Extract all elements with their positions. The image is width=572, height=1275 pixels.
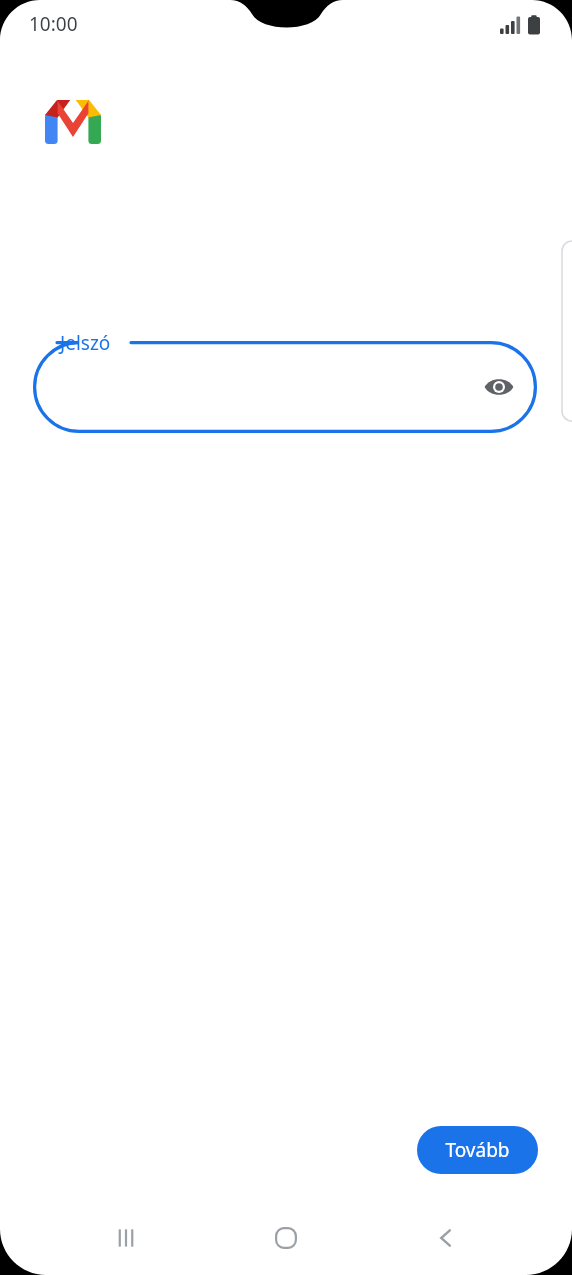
- button[interactable]: Tovább: [417, 1126, 538, 1174]
- staticText: 10:00: [29, 11, 78, 37]
- staticText: Tovább: [445, 1137, 510, 1163]
- staticText: Jelszó: [60, 330, 111, 356]
- button[interactable]: Back: [416, 1214, 476, 1262]
- button[interactable]: Recent apps: [96, 1214, 156, 1262]
- other: Signal and battery status: [500, 14, 550, 40]
- button[interactable]: Jelszó megjelenítése: [475, 363, 523, 411]
- button[interactable]: Jelszó: [33, 341, 537, 433]
- button[interactable]: Home: [256, 1214, 316, 1262]
